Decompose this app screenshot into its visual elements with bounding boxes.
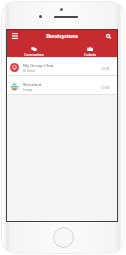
button[interactable]: My Group Chat xyxy=(6,57,118,75)
button[interactable]: Conversations xyxy=(6,43,62,57)
staticText: Hi Good xyxy=(23,69,35,73)
staticText: Contacts xyxy=(84,53,96,57)
button[interactable]: Menu xyxy=(10,31,20,41)
staticText: My Group Chat xyxy=(23,62,54,68)
button[interactable]: Search xyxy=(103,31,113,41)
staticText: Shoutbot xyxy=(23,81,42,87)
staticText: Shoutsystems xyxy=(46,33,79,39)
button[interactable]: Shoutbot xyxy=(6,76,118,94)
staticText: Image xyxy=(23,88,33,92)
staticText: 12:06 xyxy=(101,85,110,89)
staticText: 12:08 xyxy=(101,66,110,70)
button[interactable]: Contacts xyxy=(62,43,118,57)
staticText: Conversations xyxy=(24,53,44,57)
